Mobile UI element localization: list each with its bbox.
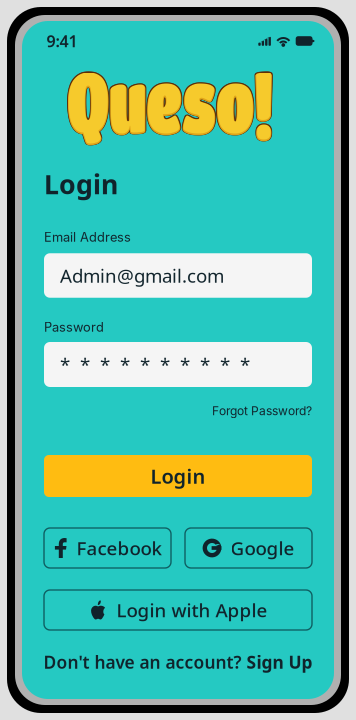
staticText: Admin@gmail.com bbox=[60, 263, 224, 288]
button[interactable]: Don't have an account? bbox=[43, 650, 312, 673]
staticText: Queso! bbox=[18, 53, 324, 148]
staticText: * * * * * * * * * * bbox=[60, 352, 250, 377]
button[interactable]: Google bbox=[185, 528, 312, 568]
staticText: Facebook bbox=[76, 536, 161, 560]
staticText: Queso! bbox=[15, 54, 321, 149]
staticText: Queso! bbox=[17, 52, 323, 147]
staticText: 9:41 bbox=[46, 30, 77, 52]
staticText: Queso! bbox=[19, 54, 325, 149]
staticText: Queso! bbox=[17, 54, 323, 149]
staticText: Queso! bbox=[19, 51, 325, 146]
staticText: Queso! bbox=[15, 53, 321, 147]
staticText: Queso! bbox=[19, 53, 325, 147]
staticText: Sign Up bbox=[246, 650, 312, 673]
button[interactable]: Forgot Password? bbox=[44, 401, 312, 421]
staticText: Login bbox=[44, 166, 118, 202]
staticText: Login with Apple bbox=[116, 598, 267, 622]
staticText: Forgot Password? bbox=[212, 404, 312, 418]
button[interactable]: Login with Apple bbox=[44, 590, 312, 630]
button[interactable]: Login bbox=[44, 455, 312, 497]
staticText: Queso! bbox=[17, 51, 323, 146]
staticText: Queso! bbox=[16, 53, 322, 148]
button[interactable]: Facebook bbox=[44, 528, 171, 568]
staticText: Don't have an account? bbox=[43, 650, 241, 673]
staticText: Password bbox=[44, 319, 104, 335]
staticText: Email Address bbox=[44, 229, 131, 245]
staticText: Google bbox=[230, 536, 294, 560]
staticText: Login bbox=[150, 463, 205, 489]
staticText: Queso! bbox=[15, 51, 321, 146]
staticText: Queso! bbox=[17, 54, 323, 149]
